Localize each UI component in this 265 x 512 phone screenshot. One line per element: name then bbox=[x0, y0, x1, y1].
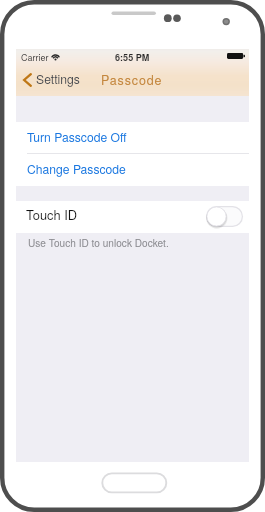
staticText: Use Touch ID to unlock Docket. bbox=[28, 235, 169, 249]
staticText: Carrier bbox=[21, 51, 49, 64]
button[interactable]: Change Passcode bbox=[16, 154, 249, 186]
button[interactable]: Touch ID bbox=[16, 201, 249, 233]
button[interactable]: Touch ID toggle, off bbox=[206, 206, 243, 227]
staticText: Change Passcode bbox=[27, 160, 126, 177]
staticText: 6:55 PM bbox=[115, 51, 150, 64]
button[interactable]: Settings bbox=[19, 64, 86, 92]
staticText: Settings bbox=[36, 70, 80, 87]
staticText: Turn Passcode Off bbox=[27, 128, 127, 145]
staticText: Passcode bbox=[101, 71, 163, 89]
staticText: Touch ID bbox=[26, 205, 78, 223]
button[interactable]: Turn Passcode Off bbox=[16, 122, 249, 154]
